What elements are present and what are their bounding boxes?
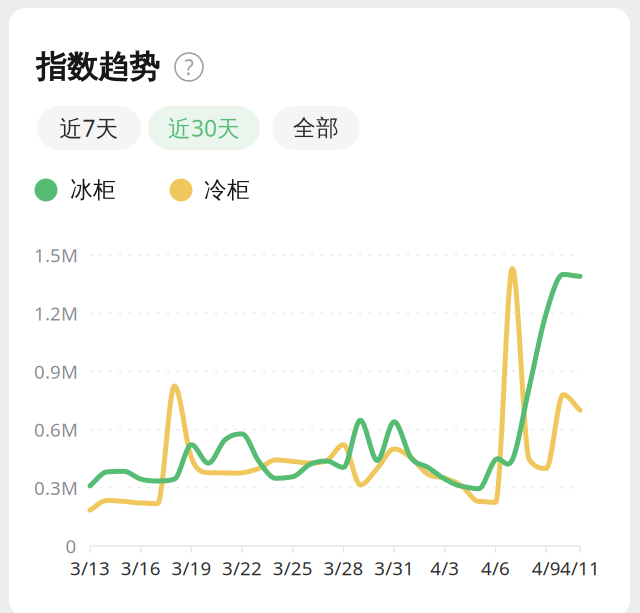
staticText: 4/9 [532,556,561,580]
staticText: 4/3 [430,556,459,580]
button[interactable]: 近7天 [37,106,141,150]
staticText: 3/25 [273,556,313,580]
staticText: 0 [65,534,76,558]
staticText: 3/16 [121,556,161,580]
button[interactable]: 全部 [272,106,360,150]
staticText: 3/19 [171,556,211,580]
staticText: 冷柜 [204,176,250,204]
staticText: 0.9M [34,359,78,384]
staticText: 3/22 [222,556,262,580]
staticText: 4/11 [560,556,600,580]
staticText: 1.5M [34,243,78,267]
staticText: 全部 [293,114,339,142]
staticText: 1.2M [34,301,78,326]
staticText: 3/13 [70,556,110,580]
staticText: 3/31 [374,556,414,580]
staticText: 0.3M [34,475,78,500]
staticText: 近30天 [168,113,240,143]
staticText: 近7天 [59,113,118,143]
button[interactable]: 帮助 [172,50,206,84]
staticText: 冰柜 [70,176,116,204]
staticText: 4/6 [481,556,510,580]
staticText: 0.6M [34,417,78,442]
staticText: 3/28 [323,556,363,580]
button[interactable]: 近30天 [148,106,260,150]
staticText: 指数趋势 [36,48,160,86]
staticText: ? [184,53,193,81]
